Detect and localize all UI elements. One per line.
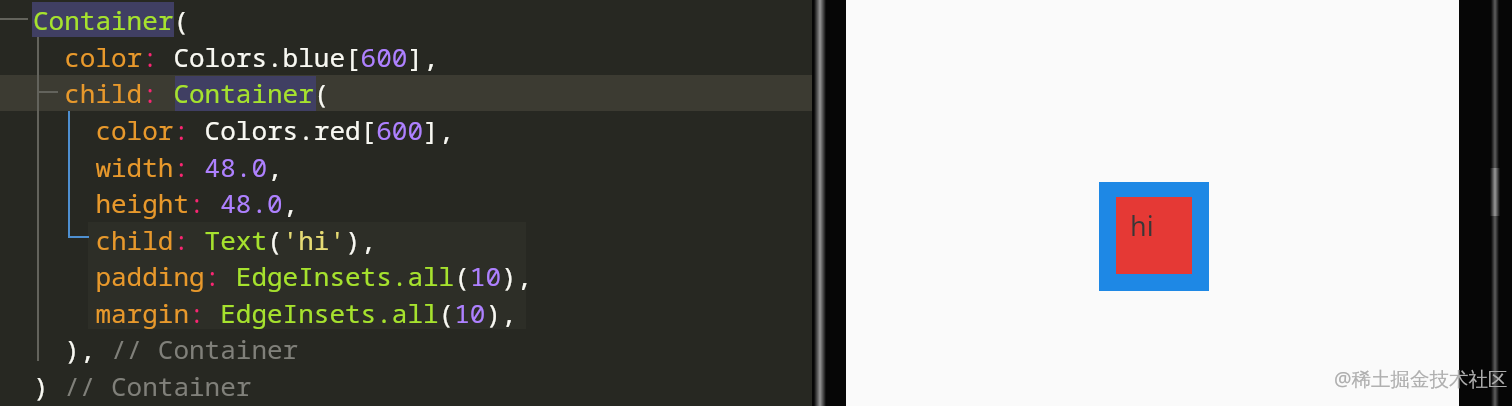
staticText: height: 48.0, [33,185,299,220]
button[interactable]: hi [1099,182,1209,291]
staticText: width: 48.0, [33,149,283,184]
staticText: child: Text('hi'), [33,222,377,257]
staticText: color: Colors.red[600], [33,112,455,147]
staticText: ), // Container [33,331,299,366]
staticText: Container( [33,2,190,37]
staticText: child: Container( [33,75,330,110]
staticText: margin: EdgeInsets.all(10), [33,295,517,330]
staticText: ) // Container [33,368,252,403]
staticText: color: Colors.blue[600], [33,39,439,74]
staticText: hi [1130,207,1154,244]
staticText: @稀土掘金技术社区 [1334,365,1508,392]
staticText: padding: EdgeInsets.all(10), [33,258,533,293]
